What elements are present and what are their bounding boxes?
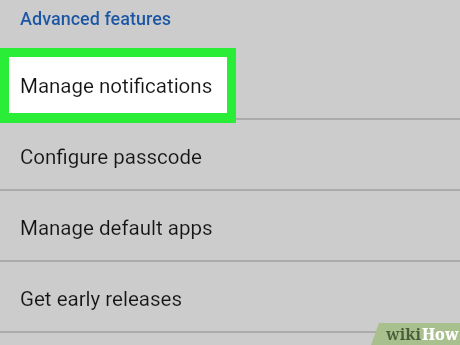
staticText: wiki bbox=[386, 323, 422, 345]
staticText: Get early releases bbox=[20, 287, 183, 311]
button[interactable]: Get early releases bbox=[0, 261, 460, 332]
button[interactable]: Manage notifications bbox=[0, 48, 236, 123]
button[interactable]: Manage default apps bbox=[0, 190, 460, 261]
staticText: Manage notifications bbox=[20, 74, 213, 98]
staticText: How bbox=[422, 323, 459, 345]
staticText: Configure passcode bbox=[20, 145, 202, 169]
staticText: Manage default apps bbox=[20, 216, 213, 240]
staticText: Advanced features bbox=[20, 8, 172, 29]
button[interactable]: Configure passcode bbox=[0, 119, 460, 190]
